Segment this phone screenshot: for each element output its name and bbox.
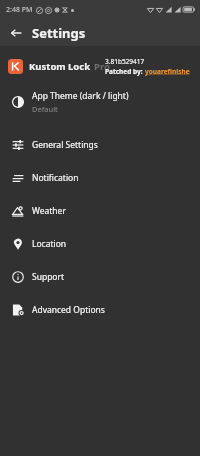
button[interactable]: Weather xyxy=(0,194,200,227)
button[interactable]: Back xyxy=(6,23,26,43)
staticText: youarefinishe xyxy=(145,67,190,76)
staticText: 2:48 PM xyxy=(6,5,33,15)
staticText: Default xyxy=(32,104,58,114)
staticText: Kustom Lock xyxy=(29,60,91,73)
staticText: Settings xyxy=(32,24,86,42)
staticText: Patched by: xyxy=(105,67,145,76)
staticText: Location xyxy=(32,238,67,250)
button[interactable]: Location xyxy=(0,227,200,260)
staticText: Support xyxy=(32,271,65,283)
button[interactable]: Kustom Lock xyxy=(0,50,200,82)
staticText: Advanced Options xyxy=(32,304,105,316)
staticText: Notification xyxy=(32,172,79,184)
button[interactable]: Support xyxy=(0,260,200,293)
button[interactable]: App Theme (dark / light) xyxy=(0,85,200,119)
button[interactable]: Notification xyxy=(0,161,200,194)
button[interactable]: Advanced Options xyxy=(0,293,200,326)
staticText: Weather xyxy=(32,205,66,217)
staticText: 3.81b529417 xyxy=(105,57,145,66)
button[interactable]: General Settings xyxy=(0,128,200,161)
staticText: Pro xyxy=(94,60,110,73)
staticText: App Theme (dark / light) xyxy=(32,90,129,102)
staticText: General Settings xyxy=(32,139,98,151)
